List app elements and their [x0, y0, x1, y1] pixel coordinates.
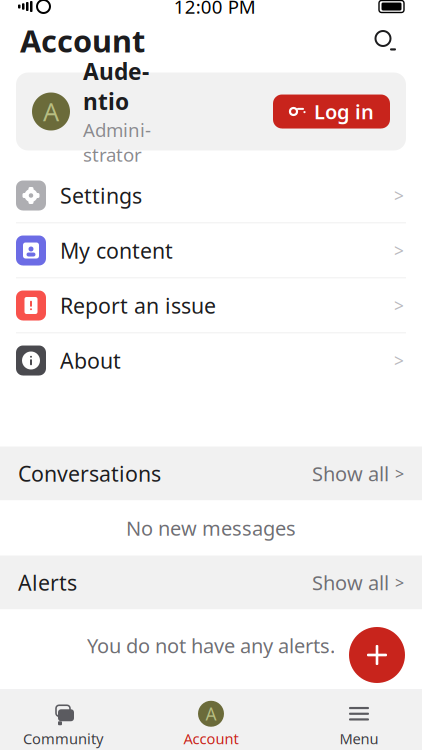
button[interactable]: Report an issue — [0, 278, 422, 333]
staticText: Menu — [339, 729, 378, 748]
button[interactable]: A — [156, 697, 266, 750]
staticText: Show all — [312, 460, 389, 487]
staticText: > — [394, 239, 404, 262]
staticText: A — [43, 95, 59, 128]
staticText: Alerts — [18, 568, 77, 597]
button[interactable]: Menu — [304, 697, 414, 750]
button[interactable]: A — [16, 72, 406, 150]
staticText: Community — [23, 729, 103, 748]
staticText: Account — [183, 729, 238, 748]
staticText: A — [205, 702, 216, 725]
staticText: Account — [20, 20, 145, 61]
button[interactable]: About — [0, 333, 422, 388]
staticText: You do not have any alerts. — [87, 632, 335, 659]
button[interactable]: Community — [8, 697, 118, 750]
staticText: My content — [60, 236, 173, 265]
button[interactable]: Settings — [0, 168, 422, 223]
button[interactable]: Create — [349, 627, 405, 683]
staticText: > — [394, 184, 404, 207]
staticText: Settings — [60, 181, 142, 210]
staticText: Log in — [314, 98, 374, 125]
staticText: Report an issue — [60, 291, 216, 320]
staticText: > — [394, 349, 404, 372]
button[interactable]: Show all — [312, 563, 404, 602]
staticText: 12:00 PM — [174, 0, 256, 19]
button[interactable]: Search — [368, 23, 402, 57]
staticText: No new messages — [126, 515, 296, 541]
staticText: > — [394, 294, 404, 317]
staticText: About — [60, 346, 121, 375]
button[interactable]: My content — [0, 223, 422, 278]
staticText: Administrator — [83, 117, 151, 167]
staticText: Conversations — [18, 459, 161, 488]
staticText: > — [395, 463, 404, 484]
staticText: > — [395, 572, 404, 593]
staticText: Audentio — [83, 56, 149, 116]
button[interactable]: Show all — [312, 454, 404, 493]
staticText: Show all — [312, 569, 389, 596]
